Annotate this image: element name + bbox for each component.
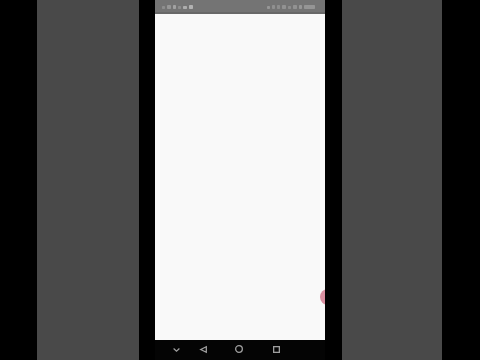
button[interactable]: Back [195,341,211,357]
button[interactable]: Home [231,341,247,357]
button[interactable]: Recent apps [268,341,284,357]
button[interactable]: Add [320,289,325,305]
button[interactable]: Hide keyboard [168,342,184,358]
